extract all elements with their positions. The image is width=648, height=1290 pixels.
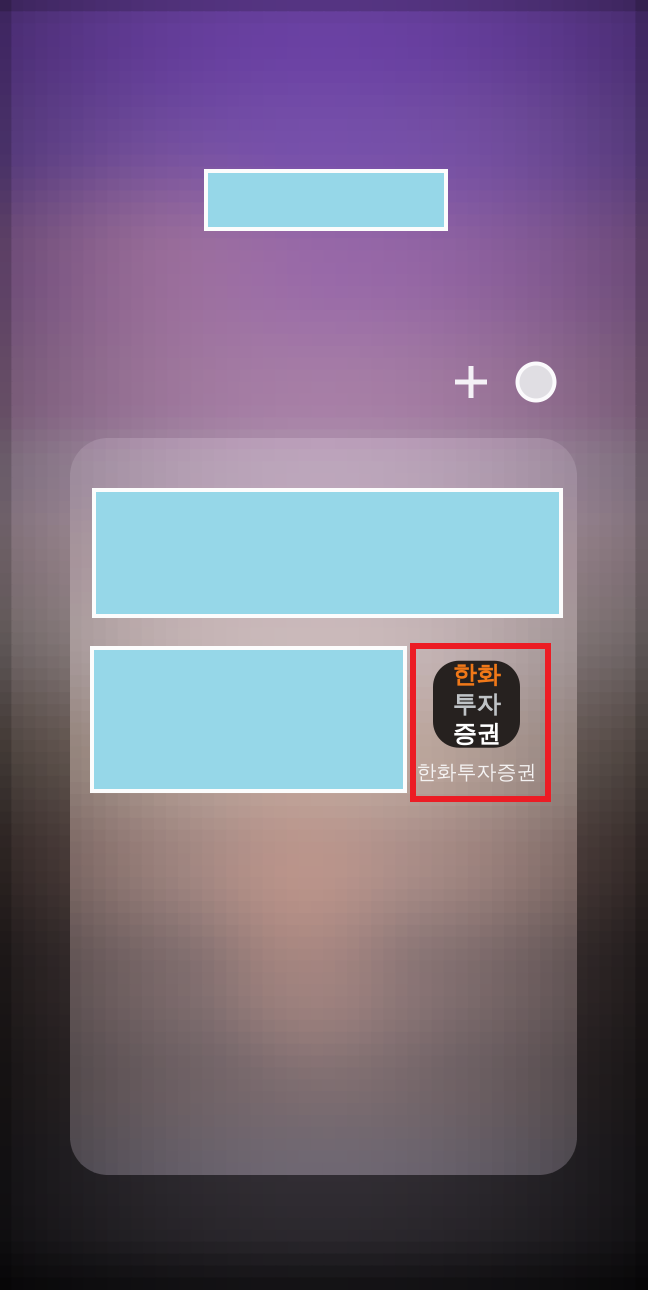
button[interactable]: Add Widget <box>444 355 498 409</box>
staticText: 투자 <box>452 689 500 719</box>
button[interactable]: 한화 <box>409 649 544 796</box>
staticText: 한화투자증권 <box>416 760 536 784</box>
staticText: 한화 <box>452 660 500 689</box>
button[interactable]: Page indicator <box>509 355 563 409</box>
staticText: 증권 <box>452 719 500 748</box>
